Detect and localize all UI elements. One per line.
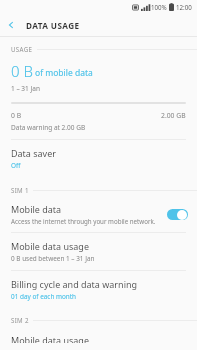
staticText: Access the internet through your mobile …: [11, 217, 156, 225]
staticText: 1 – 31 Jan: [11, 84, 40, 93]
staticText: 100%: [151, 3, 167, 11]
staticText: SIM 2: [11, 316, 29, 324]
button[interactable]: Mobile data usage: [0, 233, 197, 270]
staticText: USAGE: [11, 45, 33, 53]
staticText: SIM 1: [11, 186, 29, 194]
staticText: 01 day of each month: [11, 292, 77, 301]
button[interactable]: Mobile data usage: [0, 327, 197, 350]
button[interactable]: 0 B: [0, 100, 197, 139]
staticText: Off: [11, 161, 21, 170]
button[interactable]: Mobile data: [0, 197, 197, 232]
staticText: 0 B: [11, 111, 22, 120]
staticText: Mobile data usage: [11, 334, 89, 343]
staticText: of mobile data: [35, 67, 93, 79]
button[interactable]: Navigate up: [0, 14, 22, 36]
staticText: Data saver: [11, 147, 56, 159]
staticText: 12:00: [176, 3, 192, 11]
staticText: Billing cycle and data warning: [11, 278, 138, 290]
staticText: Mobile data usage: [11, 240, 89, 252]
staticText: Mobile data: [11, 203, 62, 215]
staticText: 2.00 GB: [161, 111, 186, 120]
button[interactable]: Billing cycle and data warning: [0, 271, 197, 308]
staticText: 0 B: [11, 61, 33, 81]
button[interactable]: Data saver: [0, 140, 197, 178]
staticText: DATA USAGE: [26, 20, 80, 31]
button[interactable]: Mobile data on: [167, 209, 188, 220]
staticText: 0 B used between 1 – 31 Jan: [11, 254, 95, 263]
staticText: Data warning at 2.00 GB: [11, 123, 86, 132]
button[interactable]: 0 B: [0, 56, 197, 100]
